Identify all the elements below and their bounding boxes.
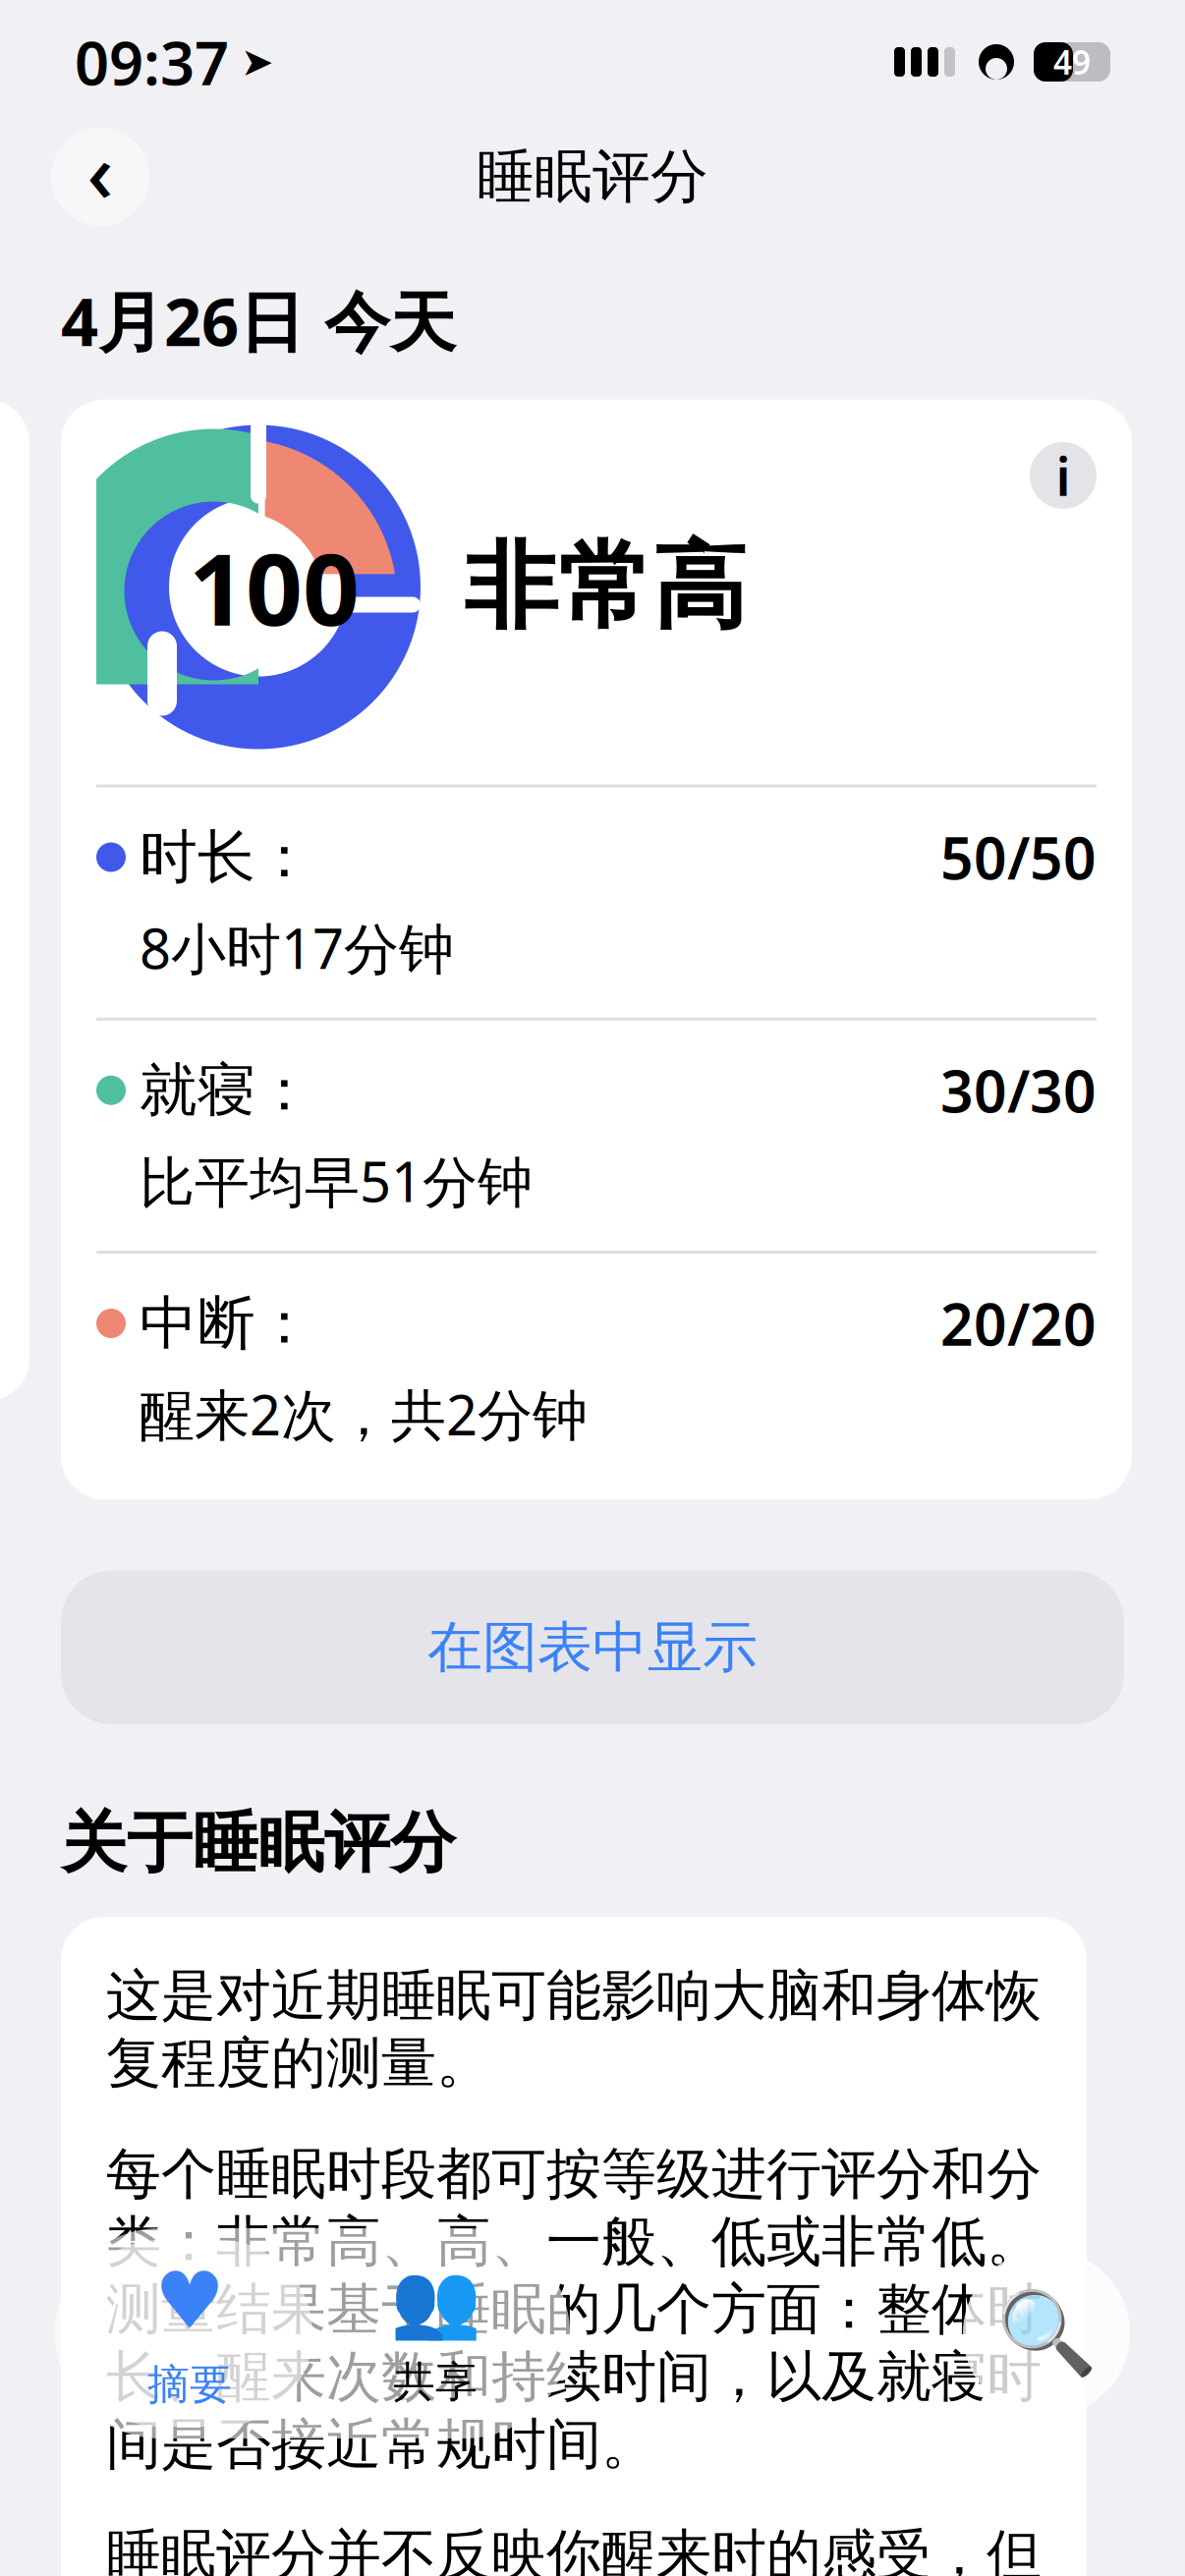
staticText: 醒来2次，共2分钟 (140, 1377, 588, 1450)
staticText: 关于睡眠评分 (61, 1803, 456, 1883)
staticText: 就寝： (140, 1055, 313, 1126)
button[interactable]: ♥ (67, 2240, 312, 2427)
staticText: ➤ (241, 40, 274, 84)
staticText: 共享 (393, 2356, 478, 2408)
staticText: 4月26日 今天 (61, 277, 456, 364)
button[interactable]: 👥 (312, 2240, 558, 2427)
staticText: 👥 (390, 2259, 481, 2343)
staticText: 49 (1053, 40, 1091, 84)
staticText: 每个睡眠时段都可按等级进行评分和分类：非常高、高、一般、低或非常低。测量结果基于… (106, 2140, 1042, 2478)
button[interactable]: 在图表中显示 (61, 1570, 1124, 1724)
staticText: 这是对近期睡眠可能影响大脑和身体恢复程度的测量。 (106, 1962, 1042, 2097)
staticText: 中断： (140, 1288, 313, 1359)
staticText: 睡眠评分 (477, 141, 708, 212)
staticText: 比平均早51分钟 (140, 1144, 533, 1217)
staticText: 100 (189, 521, 360, 653)
staticText: 20/20 (940, 1285, 1097, 1362)
button[interactable]: 搜索 (963, 2250, 1130, 2417)
button[interactable]: 信息 (1030, 441, 1097, 510)
staticText: 50/50 (940, 819, 1097, 895)
staticText: 非常高 (464, 529, 747, 645)
staticText: 09:37 (75, 22, 229, 102)
staticText: 8小时17分钟 (140, 911, 454, 984)
staticText: ‹ (87, 117, 113, 225)
staticText: 睡眠评分并不反映你醒来时的感受，但可让你了解身体是否得到充分睡眠进行休息和恢复。 (106, 2521, 1042, 2576)
staticText: 🔍 (996, 2287, 1097, 2380)
staticText: i (1056, 441, 1071, 510)
staticText: 摘要 (147, 2359, 232, 2411)
staticText: 在图表中显示 (427, 1614, 758, 1681)
staticText: 时长： (140, 822, 313, 893)
staticText: 30/30 (940, 1052, 1097, 1129)
staticText: ♥ (154, 2256, 225, 2345)
button[interactable]: 返回 (51, 123, 149, 231)
